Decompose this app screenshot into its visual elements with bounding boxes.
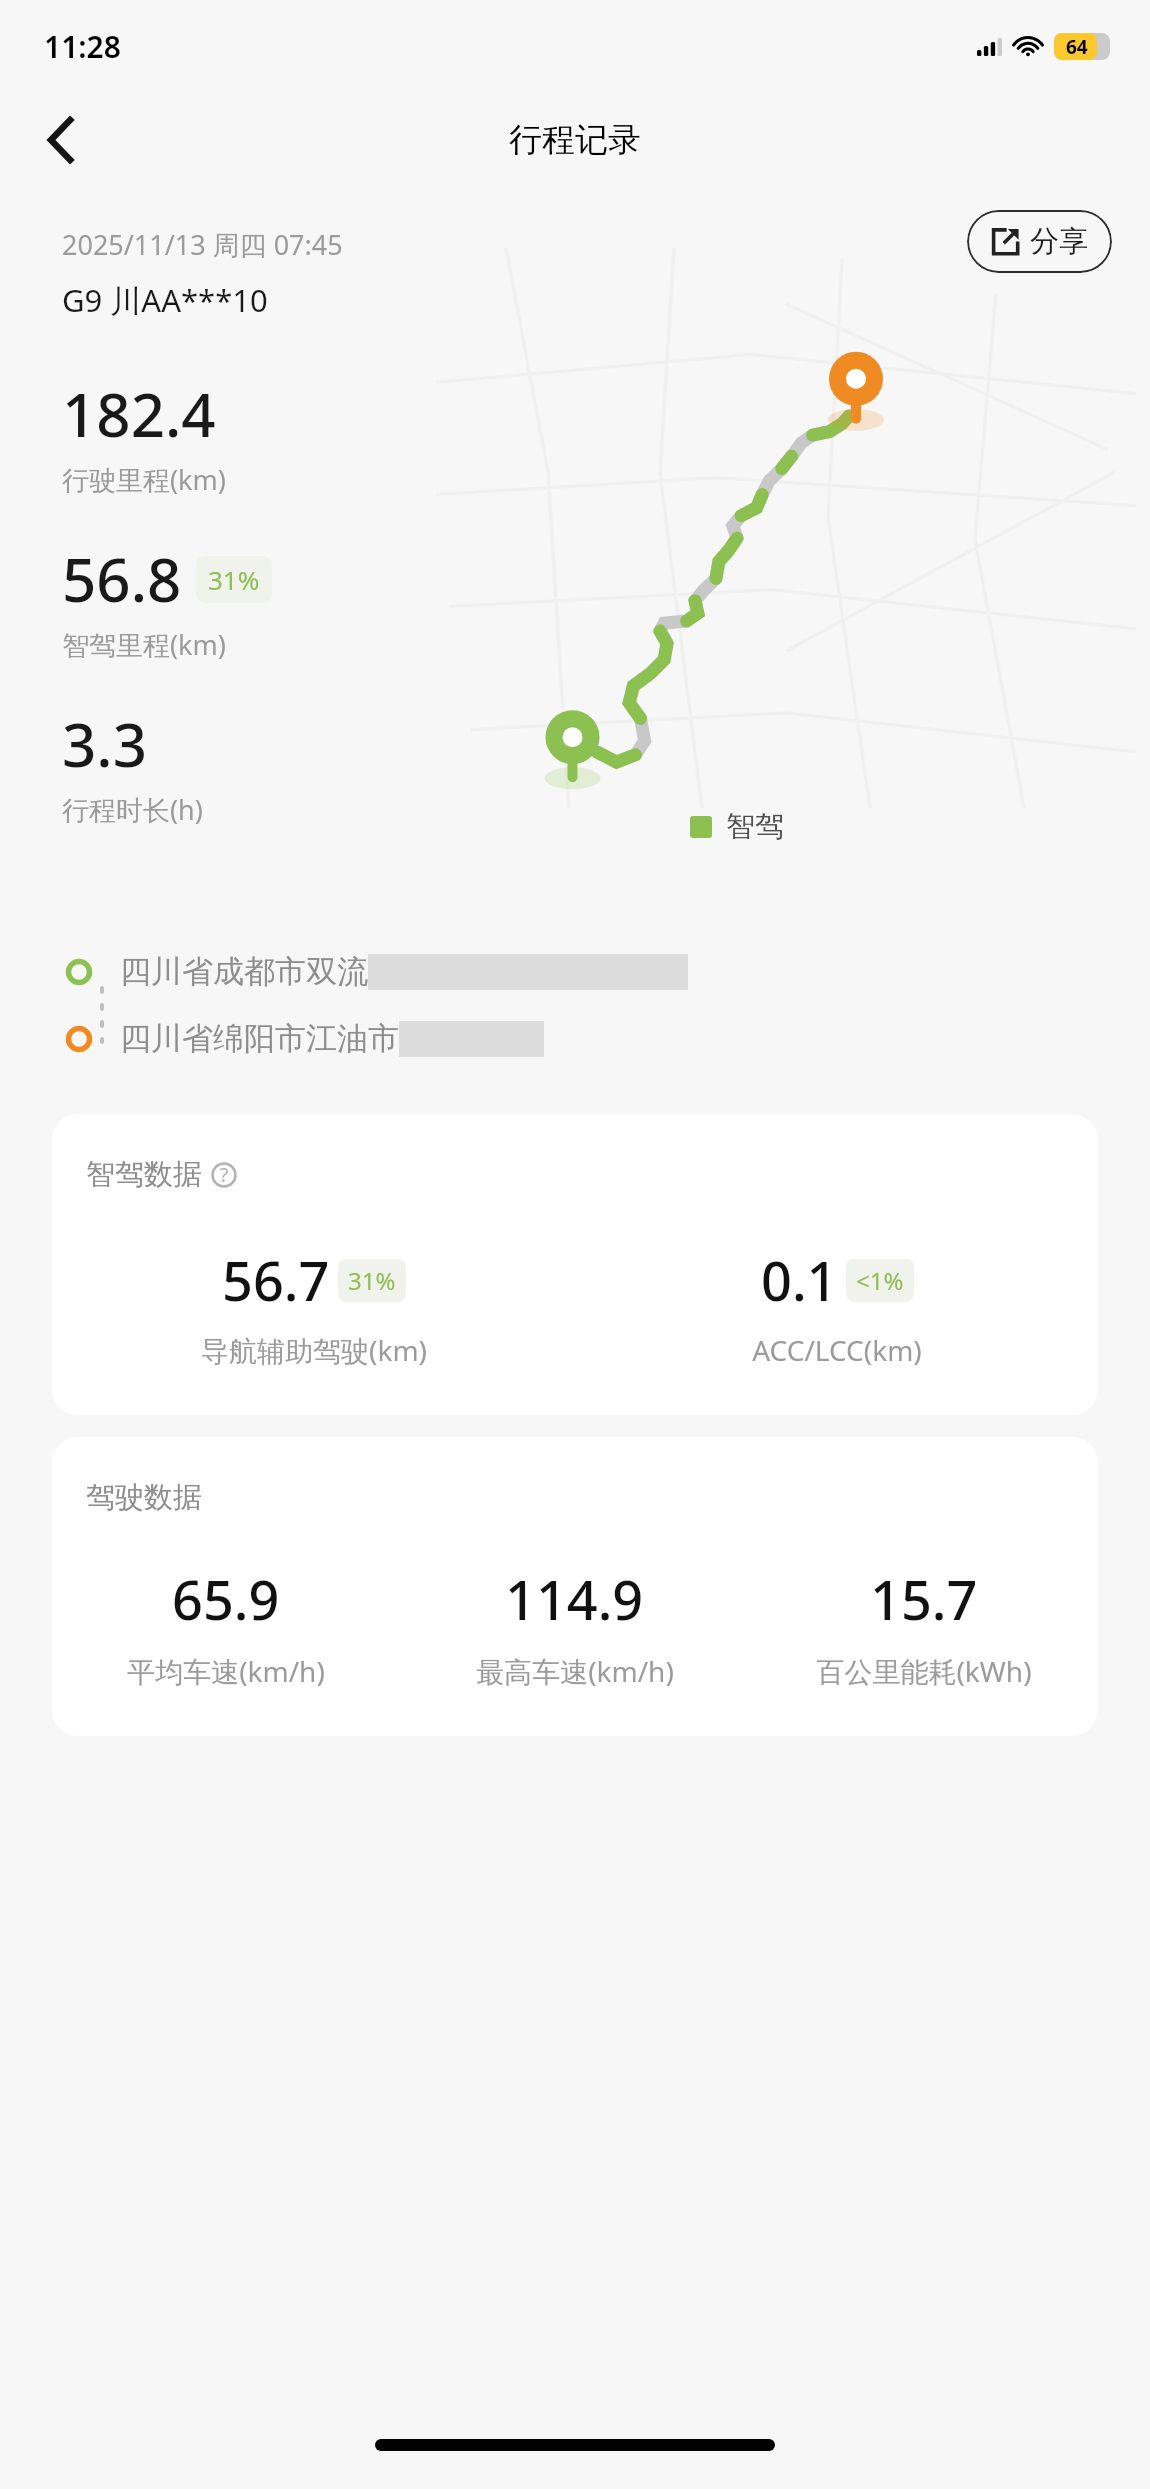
staticText: 最高车速(km/h): [476, 1652, 674, 1690]
staticText: 智驾数据: [86, 1156, 202, 1193]
staticText: 114.9: [505, 1562, 644, 1636]
staticText: 四川省绵阳市江油市: [120, 1019, 399, 1058]
button[interactable]: 智驾数据: [52, 1114, 1098, 1415]
staticText: 平均车速(km/h): [127, 1652, 325, 1690]
staticText: 3.3: [62, 703, 147, 785]
staticText: 0.1: [761, 1243, 838, 1317]
button[interactable]: 分享: [967, 210, 1112, 273]
staticText: 分享: [1030, 223, 1088, 260]
staticText: 56.7: [222, 1243, 330, 1317]
staticText: 导航辅助驾驶(km): [201, 1331, 427, 1369]
staticText: G9 川AA***10: [62, 279, 268, 321]
staticText: 31%: [348, 1264, 396, 1297]
button[interactable]: 驾驶数据: [52, 1437, 1098, 1736]
staticText: 行程记录: [509, 119, 641, 161]
staticText: 11:28: [44, 26, 121, 67]
staticText: 行驶里程(km): [62, 461, 226, 498]
staticText: 65.9: [172, 1562, 280, 1636]
staticText: ACC/LCC(km): [752, 1331, 922, 1369]
staticText: 182.4: [62, 373, 216, 455]
staticText: 64: [1066, 34, 1088, 60]
staticText: 31%: [208, 562, 260, 597]
staticText: 56.8: [62, 538, 182, 620]
staticText: ?: [220, 1162, 229, 1188]
staticText: 行程时长(h): [62, 791, 203, 828]
staticText: 百公里能耗(kWh): [816, 1652, 1032, 1690]
staticText: 15.7: [870, 1562, 978, 1636]
staticText: 智驾: [726, 808, 784, 845]
staticText: 2025/11/13 周四 07:45: [62, 226, 343, 263]
staticText: 智驾里程(km): [62, 626, 226, 663]
button[interactable]: Back: [28, 107, 94, 173]
staticText: 驾驶数据: [86, 1479, 202, 1516]
staticText: <1%: [856, 1264, 904, 1297]
staticText: 四川省成都市双流: [120, 952, 368, 991]
